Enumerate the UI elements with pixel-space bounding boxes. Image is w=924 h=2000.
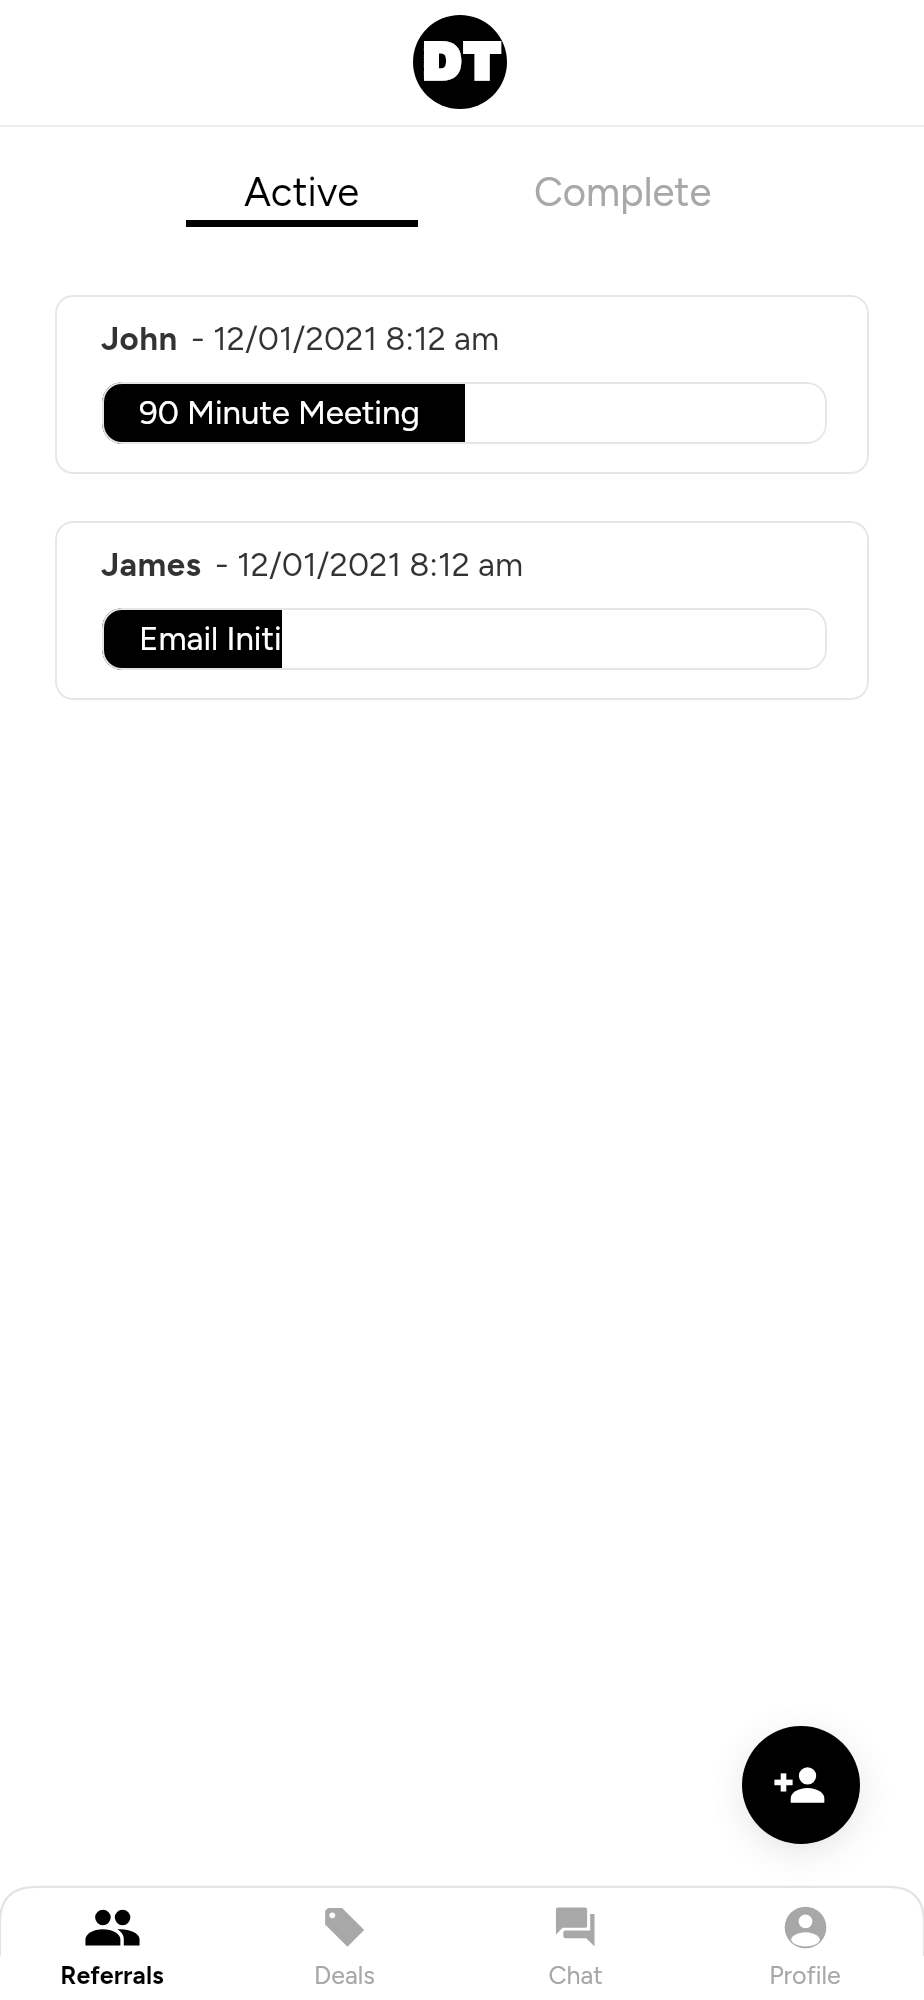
staticText: Active	[244, 168, 360, 216]
staticText: John	[101, 319, 178, 359]
button[interactable]: Active	[141, 127, 462, 227]
button[interactable]: Profile	[690, 1886, 920, 2000]
staticText: James	[101, 545, 202, 585]
button[interactable]: Add referral	[742, 1726, 860, 1844]
staticText: - 12/01/2021 8:12 am	[191, 319, 500, 359]
staticText: 90 Minute Meeting	[139, 393, 420, 433]
staticText: Deals	[314, 1960, 375, 1990]
staticText: Referrals	[60, 1960, 164, 1990]
button[interactable]: Chat	[460, 1886, 690, 2000]
button[interactable]: John	[55, 295, 869, 474]
staticText: Chat	[548, 1960, 603, 1990]
button[interactable]: Referrals	[0, 1886, 227, 2000]
staticText: Profile	[769, 1960, 841, 1990]
button[interactable]: Complete	[462, 142, 783, 242]
staticText: Complete	[534, 168, 712, 216]
button[interactable]: DT logo	[413, 15, 507, 109]
button[interactable]: James	[55, 521, 869, 700]
button[interactable]: Deals	[229, 1886, 459, 2000]
staticText: - 12/01/2021 8:12 am	[215, 545, 524, 585]
staticText: Email Initiated	[139, 619, 282, 659]
staticText: DT	[421, 35, 502, 90]
